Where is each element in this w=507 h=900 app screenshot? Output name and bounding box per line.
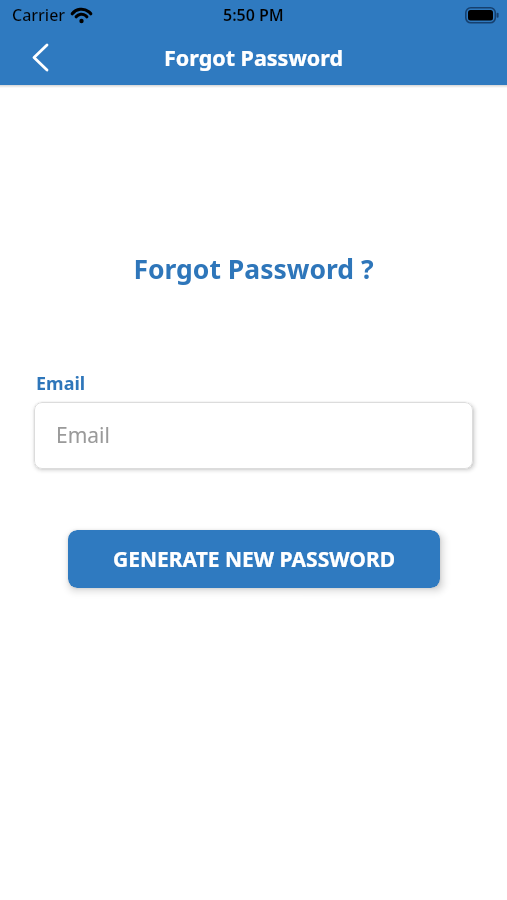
staticText: Forgot Password (164, 43, 344, 72)
staticText: 5:50 PM (223, 4, 284, 26)
staticText: Email (36, 371, 86, 396)
button[interactable] (24, 43, 56, 75)
staticText: GENERATE NEW PASSWORD (113, 545, 396, 574)
staticText: Email (56, 421, 110, 450)
staticText: Forgot Password ? (0, 251, 507, 287)
staticText: Carrier (12, 4, 66, 26)
button[interactable]: Email (34, 402, 473, 469)
button[interactable]: GENERATE NEW PASSWORD (68, 530, 440, 588)
